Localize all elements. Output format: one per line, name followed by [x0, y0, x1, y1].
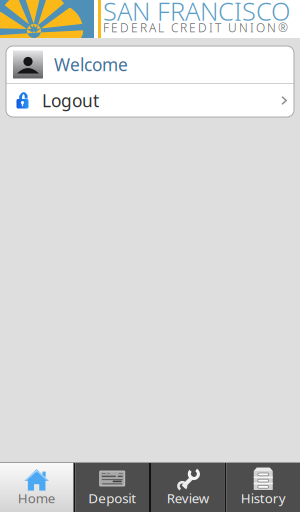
button[interactable]: Logout — [6, 84, 294, 117]
staticText: Home — [18, 489, 56, 507]
button[interactable]: Review — [151, 463, 224, 512]
button[interactable]: History — [226, 463, 300, 512]
button[interactable]: Welcome — [6, 46, 294, 83]
button[interactable]: Deposit — [75, 463, 149, 512]
staticText: Review — [167, 489, 209, 507]
staticText: History — [241, 489, 286, 507]
staticText: Deposit — [88, 489, 136, 507]
staticText: FEDERAL CREDIT UNION® — [103, 19, 288, 35]
staticText: SAN FRANCISCO — [103, 0, 290, 28]
button[interactable]: Home — [0, 463, 73, 512]
staticText: Welcome — [54, 53, 128, 76]
staticText: Logout — [42, 89, 99, 112]
